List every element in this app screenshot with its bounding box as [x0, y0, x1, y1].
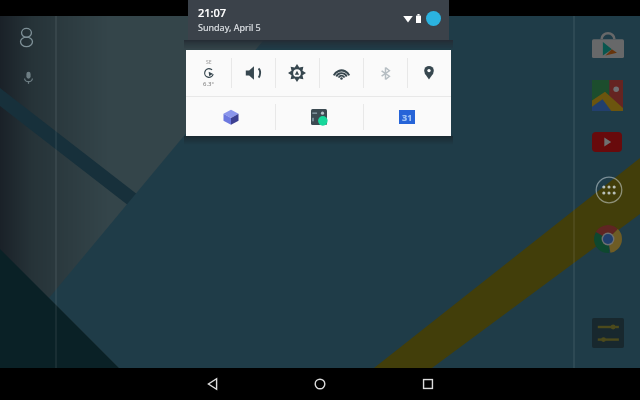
button[interactable] [319, 50, 363, 96]
button[interactable]: Google Search [20, 28, 33, 47]
button[interactable] [407, 50, 451, 96]
button[interactable]: All apps [595, 176, 623, 204]
button[interactable] [186, 97, 275, 136]
button[interactable]: Play Store [592, 32, 624, 58]
button[interactable]: 31 [363, 97, 451, 136]
button[interactable] [363, 50, 407, 96]
button[interactable]: Chrome [594, 225, 622, 253]
button[interactable]: YouTube [592, 132, 622, 152]
staticText: 6.3° [203, 80, 215, 88]
button[interactable]: Settings [592, 318, 624, 348]
button[interactable]: Maps [592, 80, 623, 111]
button[interactable]: Back [195, 368, 231, 400]
button[interactable] [275, 97, 363, 136]
button[interactable] [275, 50, 319, 96]
button[interactable]: SE [186, 50, 231, 96]
button[interactable]: Voice search [21, 70, 36, 85]
button[interactable]: Recent apps [410, 368, 446, 400]
staticText: SE [206, 59, 212, 66]
button[interactable]: Home [302, 368, 338, 400]
staticText: Sunday, April 5 [198, 21, 261, 33]
button[interactable] [231, 50, 275, 96]
staticText: 21:07 [198, 5, 227, 20]
staticText: 31 [402, 111, 413, 123]
